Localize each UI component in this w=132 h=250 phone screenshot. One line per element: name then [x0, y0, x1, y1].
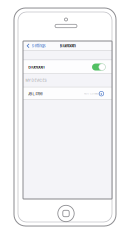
button[interactable]: JBL Free [23, 87, 112, 100]
staticText: JBL Free [27, 91, 42, 96]
button[interactable]: Bluetooth [23, 60, 112, 74]
staticText: Not Connected [84, 92, 102, 95]
staticText: Settings [32, 43, 46, 48]
staticText: Bluetooth [28, 65, 44, 69]
staticText: Bluetooth [59, 43, 75, 48]
button[interactable]: Settings [23, 41, 47, 51]
staticText: MY DEVICES [25, 78, 46, 83]
